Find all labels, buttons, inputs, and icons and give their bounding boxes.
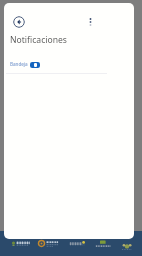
button[interactable]: Back — [13, 16, 25, 28]
button[interactable]: More options — [85, 17, 95, 27]
staticText: Bandeja — [10, 61, 28, 67]
button[interactable]: Bandeja toggle — [30, 62, 40, 68]
staticText: Notificaciones — [10, 34, 67, 46]
